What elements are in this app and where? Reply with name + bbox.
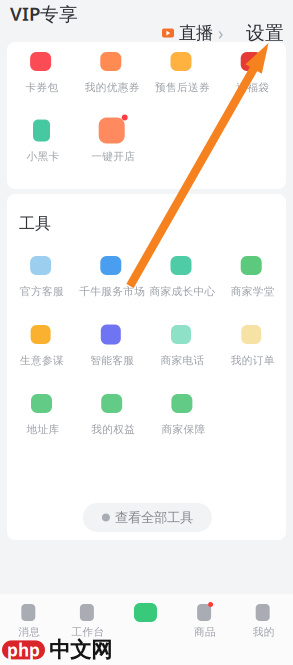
- button[interactable]: 我的: [234, 601, 293, 665]
- button[interactable]: 我的订单: [218, 318, 288, 387]
- staticText: 工具: [19, 214, 51, 233]
- button[interactable]: 卡券包: [7, 45, 77, 114]
- button[interactable]: 一键开店: [78, 114, 148, 183]
- button[interactable]: 生意参谋: [7, 318, 77, 387]
- button[interactable]: 地址库: [8, 387, 78, 456]
- button[interactable]: 小黑卡: [8, 114, 78, 183]
- staticText: 生意参谋: [20, 354, 64, 367]
- staticText: 千牛服务市场: [79, 285, 145, 298]
- button[interactable]: 设置: [223, 19, 293, 46]
- button[interactable]: 官方客服: [7, 249, 77, 318]
- staticText: 卡券包: [26, 81, 59, 94]
- staticText: 设置: [246, 21, 284, 44]
- staticText: 预售后送券: [155, 81, 210, 94]
- staticText: 中文网: [49, 637, 112, 663]
- button[interactable]: 商家成长中心: [147, 249, 218, 318]
- button[interactable]: 工作台: [59, 601, 117, 665]
- staticText: 商家电话: [160, 354, 204, 367]
- staticText: 工作台: [71, 625, 104, 638]
- button[interactable]: 预售后送券: [147, 45, 218, 114]
- staticText: 商家保障: [161, 423, 205, 436]
- staticText: 商家成长中心: [149, 285, 215, 298]
- staticText: 直播: [179, 22, 213, 44]
- button[interactable]: 千牛服务市场: [77, 249, 147, 318]
- staticText: 送福袋: [236, 81, 269, 94]
- staticText: ›: [218, 21, 223, 44]
- button[interactable]: 商家保障: [148, 387, 218, 456]
- button[interactable]: 智能客服: [77, 318, 147, 387]
- button[interactable]: 查看全部工具: [83, 503, 212, 532]
- button[interactable]: 商品: [176, 601, 234, 665]
- staticText: php: [7, 638, 40, 661]
- staticText: 商品: [194, 625, 216, 638]
- button[interactable]: 商家学堂: [218, 249, 288, 318]
- button[interactable]: 我的优惠券: [77, 45, 147, 114]
- staticText: 小黑卡: [26, 150, 59, 163]
- button[interactable]: 商家电话: [147, 318, 218, 387]
- staticText: 一键开店: [91, 150, 135, 163]
- staticText: 智能客服: [90, 354, 134, 367]
- button[interactable]: 我的权益: [78, 387, 148, 456]
- staticText: 我的: [253, 625, 275, 638]
- staticText: 查看全部工具: [115, 509, 193, 526]
- staticText: 我的订单: [231, 354, 275, 367]
- staticText: 我的权益: [91, 423, 135, 436]
- staticText: 地址库: [26, 423, 59, 436]
- button[interactable]: 发布: [117, 601, 176, 665]
- staticText: 官方客服: [20, 285, 64, 298]
- button[interactable]: 直播: [162, 19, 223, 46]
- staticText: 商家学堂: [231, 285, 275, 298]
- staticText: VIP专享: [10, 1, 78, 26]
- button[interactable]: 消息: [0, 601, 59, 665]
- button[interactable]: 送福袋: [218, 45, 288, 114]
- staticText: 消息: [18, 625, 40, 638]
- staticText: 我的优惠券: [85, 81, 140, 94]
